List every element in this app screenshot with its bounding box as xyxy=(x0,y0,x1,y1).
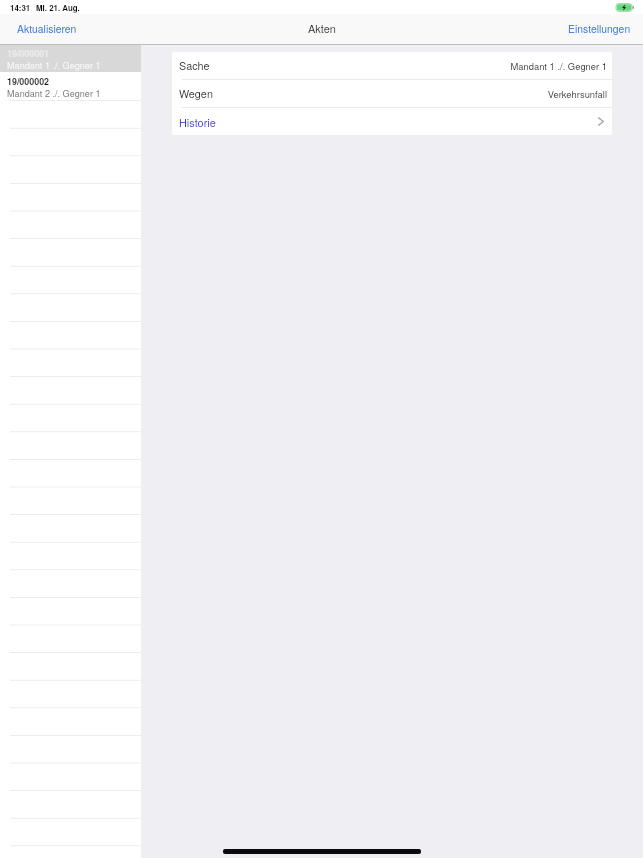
staticText: 19/000002 xyxy=(7,75,50,88)
staticText: Sache xyxy=(179,58,210,73)
staticText: Mandant 1 ./. Gegner 1 xyxy=(510,59,607,72)
staticText: Mandant 1 ./. Gegner 1 xyxy=(7,59,101,72)
staticText: 19/000001 xyxy=(7,47,50,60)
staticText: Mi. 21. Aug. xyxy=(36,2,80,13)
button[interactable]: 19/000002 xyxy=(0,72,141,100)
button[interactable]: Historie xyxy=(172,108,612,135)
staticText: Verkehrsunfall xyxy=(547,87,607,100)
button[interactable]: Einstellungen xyxy=(556,15,643,42)
button[interactable]: Wegen xyxy=(172,80,612,107)
button[interactable]: Aktualisieren xyxy=(0,15,94,42)
other: Open Historie xyxy=(598,117,604,126)
staticText: Historie xyxy=(179,114,216,130)
button[interactable]: 19/000001 xyxy=(0,45,141,72)
staticText: Aktualisieren xyxy=(17,21,77,36)
staticText: Akten xyxy=(308,20,336,36)
staticText: Einstellungen xyxy=(568,21,631,36)
button[interactable]: Sache xyxy=(172,52,612,79)
staticText: 14:31 xyxy=(10,2,31,13)
staticText: Mandant 2 ./. Gegner 1 xyxy=(7,87,101,100)
staticText: Wegen xyxy=(179,86,213,101)
other: Battery charging xyxy=(616,2,634,13)
